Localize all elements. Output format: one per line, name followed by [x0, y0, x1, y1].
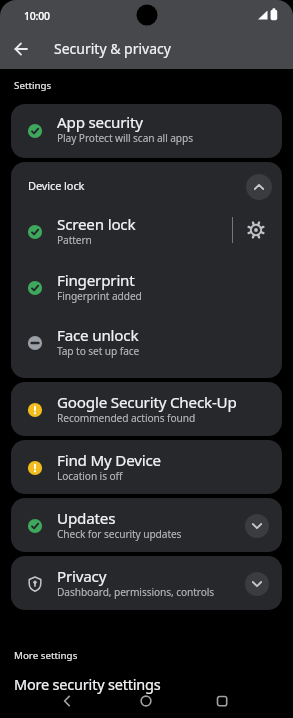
staticText: 10:00	[24, 9, 50, 23]
staticText: Pattern	[57, 233, 92, 247]
staticText: Fingerprint	[57, 270, 135, 291]
staticText: Find My Device	[57, 450, 161, 471]
button[interactable]	[11, 556, 282, 610]
staticText: Tap to set up face	[57, 344, 140, 358]
staticText: Google Security Check-Up	[57, 392, 237, 413]
button[interactable]	[11, 104, 282, 158]
staticText: Screen lock	[57, 214, 136, 235]
button[interactable]	[245, 514, 269, 538]
staticText: App security	[57, 112, 143, 133]
button[interactable]	[8, 36, 34, 62]
staticText: Security & privacy	[54, 39, 171, 58]
button[interactable]	[244, 218, 268, 242]
button[interactable]	[11, 162, 282, 378]
staticText: Recommended actions found	[57, 411, 196, 425]
staticText: More security settings	[14, 674, 161, 694]
staticText: Privacy	[57, 566, 107, 587]
staticText: Fingerprint added	[57, 289, 142, 303]
staticText: Location is off	[57, 469, 123, 483]
staticText: Play Protect will scan all apps	[57, 131, 193, 145]
button[interactable]	[52, 687, 80, 715]
staticText: Face unlock	[57, 325, 139, 346]
staticText: Device lock	[28, 178, 85, 193]
staticText: Check for security updates	[57, 527, 182, 541]
button[interactable]	[11, 498, 282, 552]
button[interactable]	[11, 440, 282, 494]
button[interactable]	[208, 687, 236, 715]
staticText: Settings	[14, 79, 52, 92]
button[interactable]	[245, 572, 269, 596]
staticText: Updates	[57, 508, 116, 529]
button[interactable]	[11, 382, 282, 436]
button[interactable]	[132, 687, 160, 715]
staticText: More settings	[14, 649, 78, 662]
button[interactable]	[246, 174, 272, 200]
staticText: Dashboard, permissions, controls	[57, 585, 215, 599]
